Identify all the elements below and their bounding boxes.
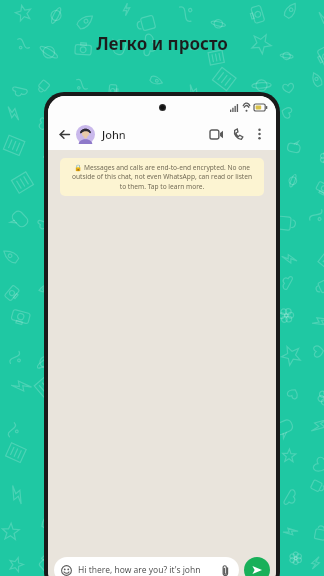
button[interactable]: More options [249, 124, 269, 144]
button[interactable]: Attach [219, 564, 232, 576]
button[interactable]: Video call [205, 123, 227, 145]
staticText: John [102, 127, 126, 142]
staticText: 🔒 Messages and calls are end-to-end encr… [68, 163, 256, 191]
button[interactable]: Hi there, how are you? it's john [54, 557, 239, 576]
staticText: Hi there, how are you? it's john [78, 564, 215, 576]
button[interactable]: Send [244, 557, 270, 576]
button[interactable]: Back [55, 125, 73, 143]
button[interactable]: John [76, 125, 205, 144]
staticText: Легко и просто [96, 32, 228, 55]
button[interactable]: 🔒 Messages and calls are end-to-end encr… [60, 158, 264, 196]
button[interactable]: Voice call [227, 123, 249, 145]
